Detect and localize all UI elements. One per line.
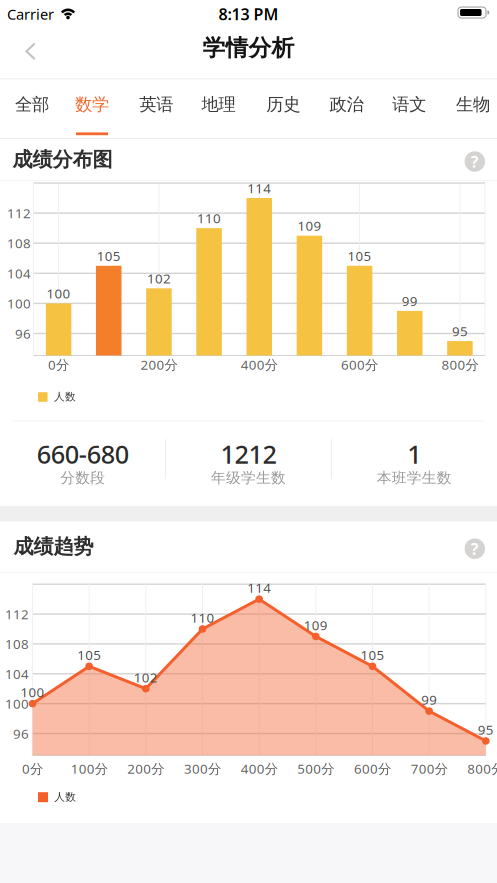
- staticText: 人数: [54, 790, 76, 803]
- staticText: 660-680: [37, 437, 129, 471]
- staticText: 历史: [266, 94, 300, 115]
- staticText: 成绩趋势: [13, 534, 93, 559]
- staticText: 96: [13, 725, 29, 742]
- staticText: 105: [77, 646, 101, 664]
- staticText: 102: [147, 269, 171, 287]
- staticText: 800分: [467, 760, 497, 777]
- staticText: 105: [360, 646, 384, 664]
- staticText: Carrier: [7, 4, 54, 24]
- staticText: 100分: [71, 760, 108, 777]
- staticText: 1212: [220, 437, 276, 471]
- staticText: 114: [247, 179, 271, 197]
- staticText: 99: [421, 691, 437, 708]
- staticText: 100: [47, 284, 71, 302]
- staticText: 108: [5, 635, 29, 653]
- staticText: ?: [471, 538, 479, 559]
- staticText: ?: [471, 151, 479, 172]
- staticText: 数学: [75, 94, 109, 115]
- staticText: 100: [20, 683, 44, 701]
- staticText: 99: [402, 292, 418, 310]
- button[interactable]: 英语: [126, 82, 186, 126]
- staticText: 200分: [140, 356, 177, 373]
- staticText: 全部: [15, 94, 49, 115]
- staticText: 300分: [184, 760, 221, 777]
- staticText: 语文: [392, 94, 426, 115]
- staticText: 学情分析: [202, 34, 294, 62]
- staticText: 400分: [241, 760, 278, 777]
- staticText: 地理: [202, 94, 236, 115]
- staticText: 100: [7, 294, 31, 312]
- staticText: 生物: [456, 94, 490, 115]
- staticText: 112: [7, 204, 31, 222]
- staticText: 112: [5, 605, 29, 623]
- staticText: 102: [134, 668, 158, 686]
- button[interactable]: ?: [465, 538, 485, 559]
- staticText: 700分: [411, 760, 448, 777]
- button[interactable]: ?: [465, 151, 485, 172]
- button[interactable]: [12, 33, 48, 69]
- button[interactable]: 全部: [2, 82, 62, 126]
- button[interactable]: 历史: [253, 82, 313, 126]
- button[interactable]: 政治: [316, 82, 376, 126]
- staticText: 108: [7, 234, 31, 252]
- staticText: 104: [5, 665, 29, 683]
- staticText: 8:13 PM: [218, 3, 278, 25]
- button[interactable]: 地理: [189, 82, 249, 126]
- staticText: 分数段: [60, 469, 105, 487]
- staticText: 600分: [341, 356, 378, 373]
- staticText: 104: [7, 264, 31, 282]
- button[interactable]: 数学: [62, 82, 122, 126]
- staticText: 本班学生数: [377, 469, 452, 487]
- staticText: 110: [190, 609, 214, 626]
- button[interactable]: 生物: [443, 82, 497, 126]
- staticText: 200分: [127, 760, 164, 777]
- staticText: 96: [15, 325, 31, 342]
- staticText: 110: [197, 209, 221, 227]
- staticText: 95: [452, 322, 468, 340]
- staticText: 400分: [241, 356, 278, 373]
- staticText: 109: [297, 217, 321, 234]
- staticText: 成绩分布图: [12, 147, 112, 172]
- staticText: 109: [304, 616, 328, 634]
- staticText: 100: [5, 695, 29, 712]
- staticText: 人数: [54, 390, 76, 403]
- staticText: 英语: [139, 94, 173, 115]
- staticText: 600分: [354, 760, 391, 777]
- staticText: 500分: [297, 760, 334, 777]
- staticText: 政治: [329, 94, 363, 115]
- staticText: 105: [348, 247, 372, 265]
- staticText: 800分: [441, 356, 478, 373]
- staticText: 年级学生数: [211, 469, 286, 487]
- staticText: 95: [478, 721, 494, 738]
- staticText: 0分: [22, 760, 43, 777]
- button[interactable]: 语文: [379, 82, 439, 126]
- staticText: 1: [407, 437, 421, 471]
- staticText: 0分: [48, 356, 69, 373]
- staticText: 105: [97, 247, 121, 265]
- staticText: 114: [247, 579, 271, 596]
